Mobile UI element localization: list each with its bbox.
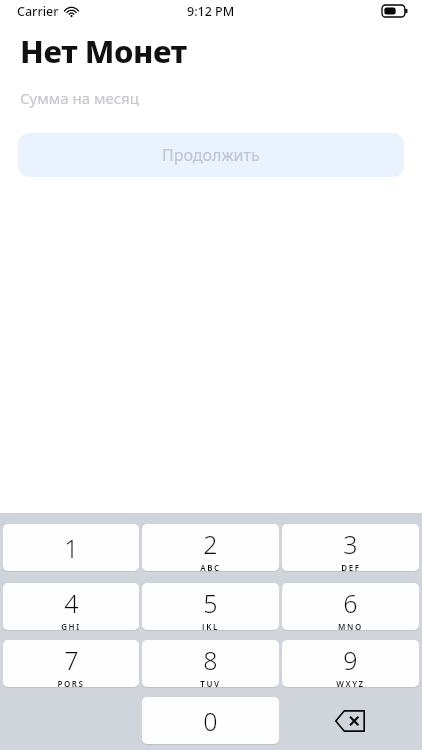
staticText: 9 [343, 643, 358, 677]
button[interactable]: 4 [3, 583, 139, 630]
button[interactable]: 6 [282, 583, 419, 630]
button[interactable]: Backspace [282, 697, 419, 745]
button[interactable]: 2 [142, 524, 279, 571]
staticText: 2 [203, 527, 218, 561]
staticText: 3 [343, 527, 358, 561]
staticText: Продолжить [162, 144, 260, 166]
button[interactable]: 5 [142, 583, 279, 630]
staticText: Сумма на месяц [20, 88, 139, 108]
staticText: Carrier [17, 3, 59, 20]
staticText: GHI [61, 621, 81, 630]
button[interactable]: Продолжить [18, 133, 404, 177]
staticText: 7 [64, 643, 79, 677]
staticText: JKL [202, 621, 219, 630]
staticText: MNO [338, 621, 363, 630]
staticText: PQRS [57, 678, 85, 687]
staticText: 6 [343, 586, 358, 620]
button[interactable]: 9 [282, 640, 419, 687]
staticText: 5 [203, 586, 218, 620]
staticText: 4 [64, 586, 79, 620]
staticText: DEF [341, 562, 361, 571]
staticText: Нет Монет [20, 30, 187, 72]
button[interactable]: 8 [142, 640, 279, 687]
staticText: ABC [200, 562, 221, 571]
button[interactable]: 1 [3, 524, 139, 571]
button[interactable]: 3 [282, 524, 419, 571]
staticText: 9:12 PM [187, 3, 235, 20]
staticText: 0 [203, 704, 218, 738]
staticText: WXYZ [336, 678, 365, 687]
staticText: 8 [203, 643, 218, 677]
button[interactable]: 7 [3, 640, 139, 687]
staticText: 1 [64, 531, 79, 565]
staticText: TUV [200, 678, 221, 687]
button[interactable]: 0 [142, 697, 279, 744]
